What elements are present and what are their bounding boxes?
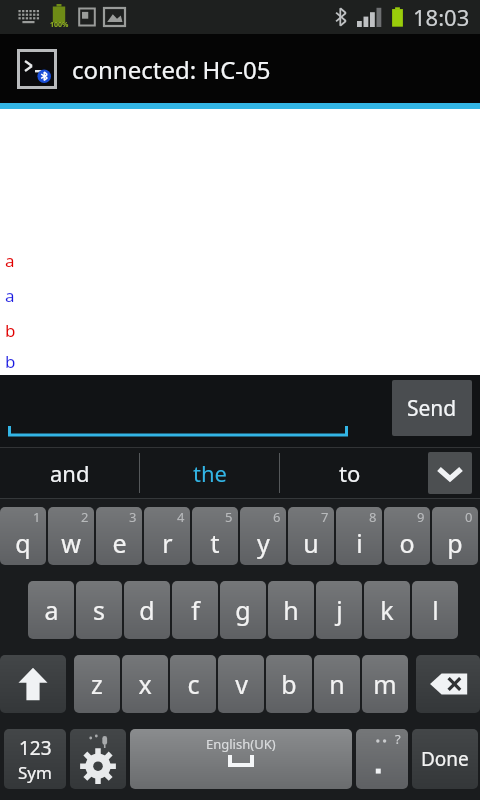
button[interactable]: 5 (192, 507, 238, 565)
staticText: 4 (177, 508, 185, 526)
staticText: w (61, 526, 81, 560)
staticText: a (5, 284, 15, 307)
staticText: b (5, 319, 16, 342)
button[interactable]: Send (392, 380, 472, 436)
button[interactable]: l (412, 581, 458, 639)
button[interactable]: 2 (48, 507, 94, 565)
staticText: the (193, 458, 227, 488)
button[interactable]: m (362, 655, 408, 713)
staticText: o (399, 526, 415, 560)
staticText: j (336, 593, 343, 627)
button[interactable]: 123 (4, 729, 66, 789)
button[interactable]: Key (0, 655, 66, 713)
staticText: 123 (19, 735, 52, 761)
button[interactable]: Key (416, 655, 480, 713)
staticText: h (283, 593, 299, 627)
button[interactable]: n (314, 655, 360, 713)
button[interactable]: 9 (384, 507, 430, 565)
button[interactable]: x (122, 655, 168, 713)
staticText: a (5, 249, 15, 272)
button[interactable]: 4 (144, 507, 190, 565)
staticText: v (235, 667, 248, 701)
staticText: to (339, 458, 361, 488)
staticText: g (235, 593, 251, 627)
button[interactable]: Key (70, 729, 126, 789)
button[interactable]: and (0, 447, 139, 499)
staticText: b (5, 350, 16, 373)
staticText: Done (421, 746, 469, 772)
button[interactable]: z (74, 655, 120, 713)
button[interactable]: v (218, 655, 264, 713)
button[interactable]: g (220, 581, 266, 639)
staticText: Send (407, 394, 457, 423)
staticText: connected: HC-05 (72, 53, 271, 86)
staticText: r (162, 526, 173, 560)
staticText: k (380, 593, 394, 627)
staticText: 7 (321, 508, 329, 526)
button[interactable]: Expand suggestions (419, 447, 480, 499)
staticText: c (187, 667, 200, 701)
staticText: f (191, 593, 200, 627)
staticText: e (112, 526, 127, 560)
button[interactable]: the (140, 447, 279, 499)
button[interactable]: s (76, 581, 122, 639)
staticText: l (432, 593, 439, 627)
staticText: 100% (50, 20, 69, 30)
staticText: 9 (417, 508, 425, 526)
button[interactable]: b (266, 655, 312, 713)
button[interactable] (8, 380, 348, 438)
staticText: English(UK) (206, 735, 276, 753)
staticText: 8 (369, 508, 377, 526)
staticText: s (93, 593, 105, 627)
staticText: i (356, 526, 363, 560)
staticText: 3 (129, 508, 137, 526)
staticText: 2 (81, 508, 89, 526)
staticText: a (44, 593, 59, 627)
staticText: m (373, 667, 397, 701)
staticText: u (303, 526, 319, 560)
staticText: z (91, 667, 103, 701)
staticText: Sym (18, 761, 52, 784)
staticText: y (257, 526, 270, 560)
button[interactable]: 7 (288, 507, 334, 565)
staticText: p (447, 526, 463, 560)
button[interactable]: d (124, 581, 170, 639)
button[interactable]: k (364, 581, 410, 639)
staticText: n (329, 667, 345, 701)
staticText: 1 (33, 508, 41, 526)
button[interactable]: c (170, 655, 216, 713)
button[interactable]: 0 (432, 507, 478, 565)
button[interactable]: Done (412, 729, 478, 789)
staticText: and (50, 458, 90, 488)
button[interactable]: h (268, 581, 314, 639)
button[interactable]: 6 (240, 507, 286, 565)
button[interactable]: 8 (336, 507, 382, 565)
button[interactable]: 3 (96, 507, 142, 565)
staticText: 0 (465, 508, 473, 526)
staticText: x (138, 667, 152, 701)
button[interactable]: to (280, 447, 419, 499)
staticText: 5 (225, 508, 233, 526)
button[interactable]: f (172, 581, 218, 639)
staticText: d (139, 593, 155, 627)
button[interactable]: Space (130, 729, 352, 789)
button[interactable]: j (316, 581, 362, 639)
staticText: t (210, 526, 220, 560)
button[interactable]: 1 (0, 507, 46, 565)
staticText: 6 (273, 508, 281, 526)
staticText: ? (395, 730, 401, 748)
staticText: q (15, 526, 31, 560)
staticText: b (281, 667, 297, 701)
button[interactable]: a (28, 581, 74, 639)
staticText: 18:03 (413, 2, 470, 32)
button[interactable]: Period (356, 729, 408, 789)
